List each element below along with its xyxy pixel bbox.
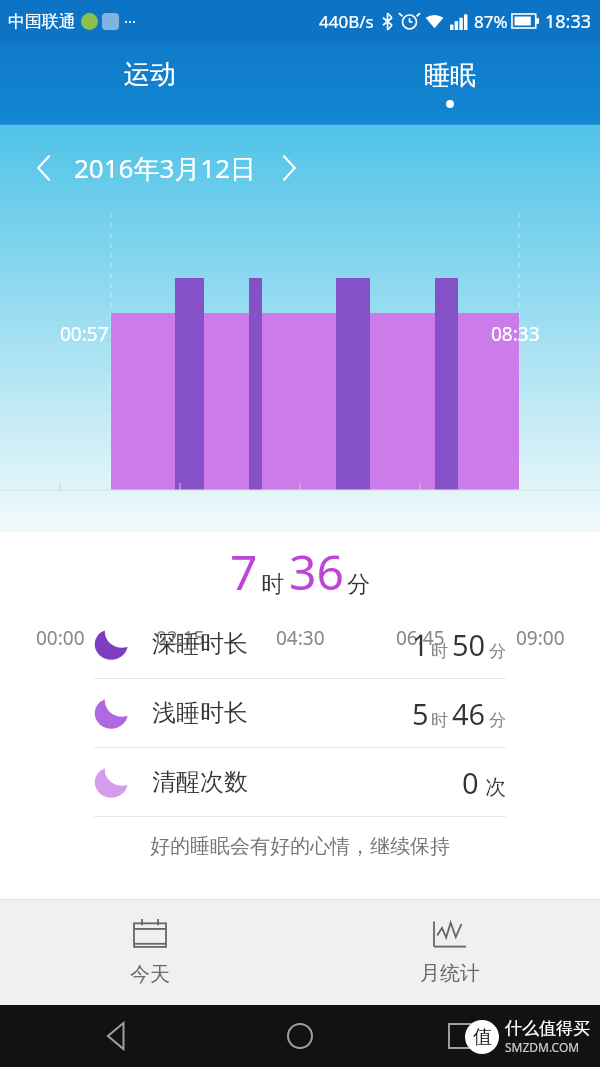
staticText: 50 [452,625,486,664]
staticText: 440B/s [319,10,374,33]
staticText: 中国联通 [8,11,76,32]
staticText: 46 [452,694,486,733]
staticText: 0 [462,763,479,802]
button[interactable]: Back [0,1005,198,1067]
staticText: 时 [261,570,284,599]
staticText: 什么值得买 [505,1018,590,1039]
staticText: 时 [431,710,448,731]
staticText: 月统计 [420,961,480,986]
staticText: 浅睡时长 [152,698,248,728]
staticText: 08:33 [491,321,540,347]
staticText: 36 [289,539,344,604]
button[interactable]: Home [0,1005,600,1067]
staticText: 7 [230,539,258,604]
staticText: 分 [489,641,506,662]
button[interactable]: 浅睡时长 [94,679,506,747]
button[interactable]: 运动 [0,42,300,125]
button[interactable]: Previous day [24,148,64,188]
button[interactable]: 今天 [0,900,300,1005]
staticText: 今天 [130,962,170,987]
staticText: 分 [347,570,370,599]
button[interactable]: 月统计 [300,900,600,1005]
staticText: 00:57 [60,321,109,347]
staticText: 18:33 [545,9,592,34]
button[interactable]: Next day [269,148,309,188]
staticText: 睡眠 [424,59,476,92]
staticText: 深睡时长 [152,629,248,659]
staticText: 运动 [124,58,176,91]
staticText: 好的睡眠会有好的心情，继续保持 [150,834,450,859]
staticText: 04:30 [276,625,325,651]
staticText: 分 [489,710,506,731]
staticText: 次 [485,774,506,800]
button[interactable]: 睡眠 [300,42,600,125]
staticText: 1 [412,625,429,664]
staticText: 清醒次数 [152,767,248,797]
staticText: 时 [431,641,448,662]
button[interactable]: Recent apps [402,1005,600,1067]
staticText: 06:45 [396,625,445,651]
button[interactable]: 清醒次数 [94,748,506,816]
staticText: 2016年3月12日 [74,150,257,186]
staticText: 5 [412,694,429,733]
staticText: ··· [124,11,137,31]
button[interactable]: 深睡时长 [94,610,506,678]
staticText: 09:00 [516,625,565,651]
staticText: 02:15 [156,625,205,651]
staticText: 00:00 [36,625,85,651]
staticText: 值 [473,1025,492,1049]
staticText: 87% [474,10,508,33]
staticText: SMZDM.COM [505,1039,580,1055]
